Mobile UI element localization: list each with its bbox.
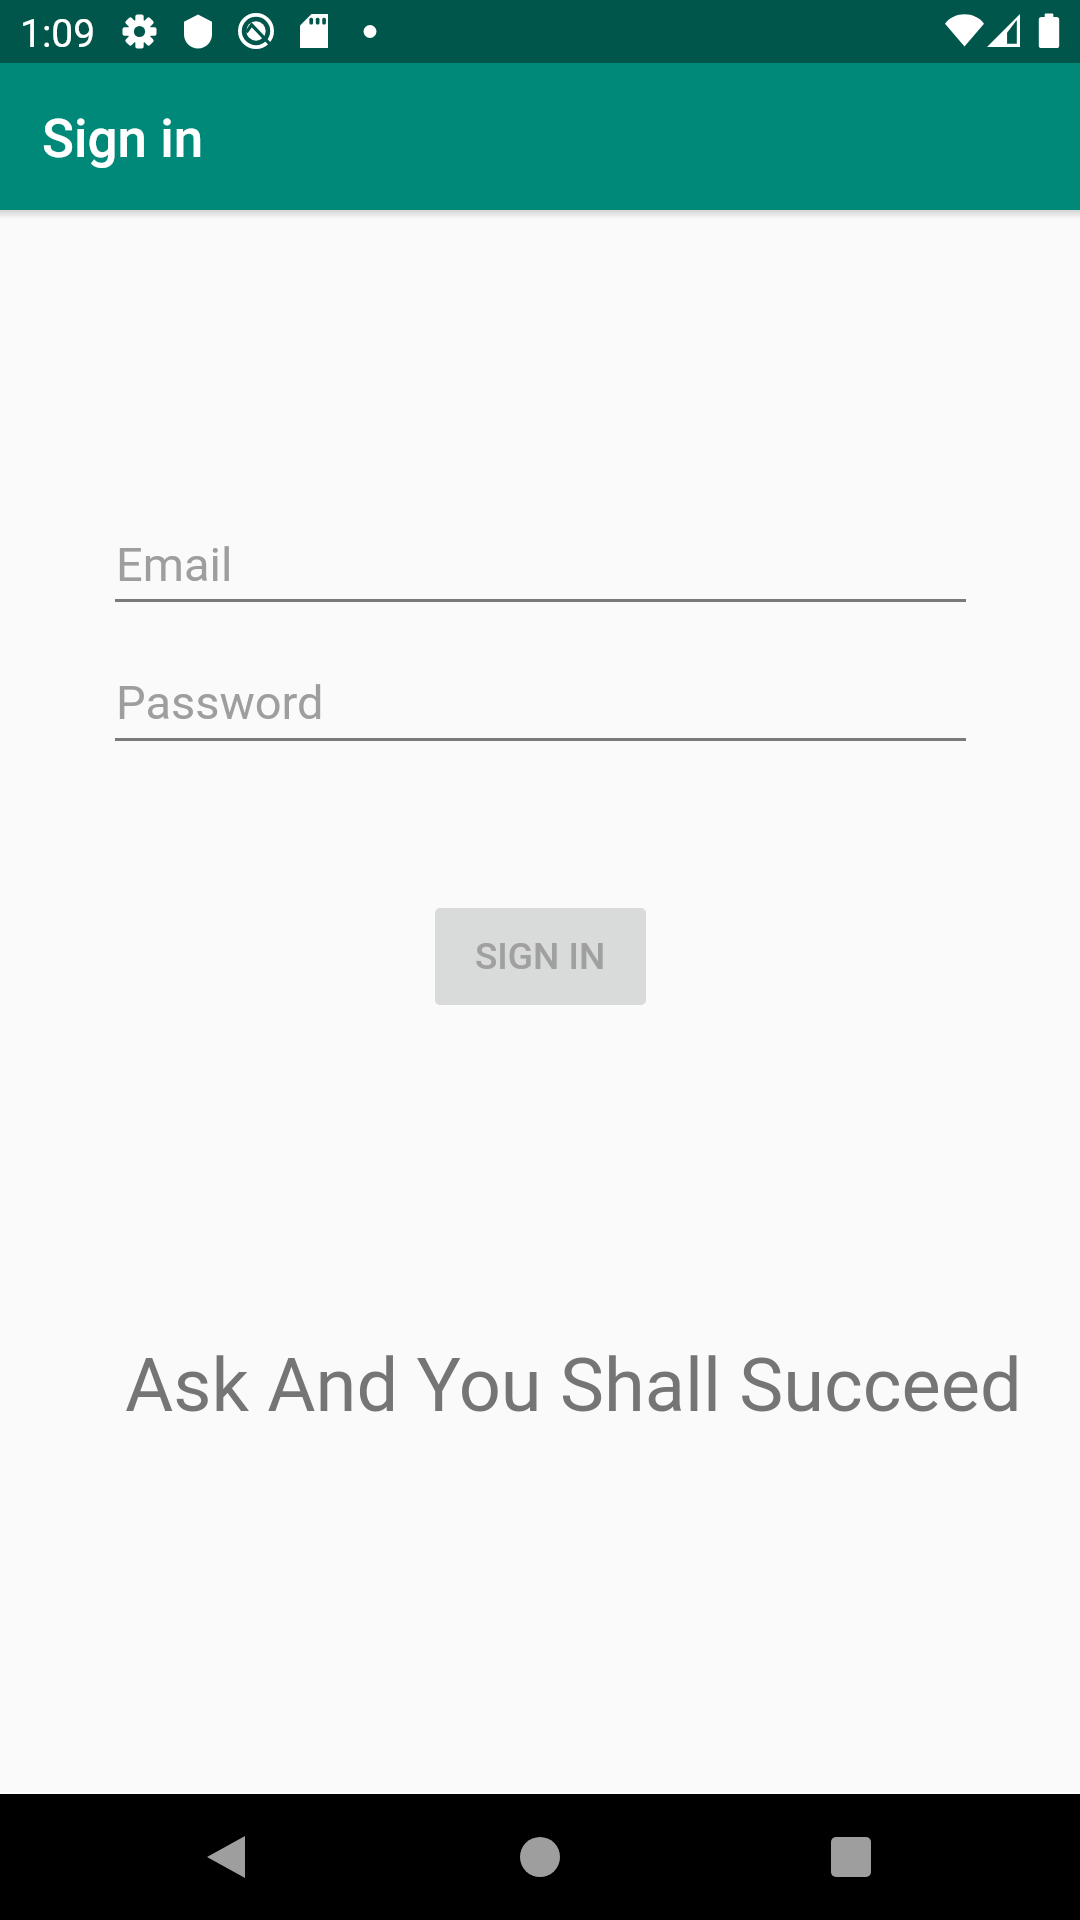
button[interactable]: SIGN IN	[435, 908, 646, 1005]
staticText: Password	[116, 675, 324, 730]
staticText: 1:09	[20, 11, 96, 57]
button[interactable]: Recent apps	[791, 1797, 911, 1917]
staticText: SIGN IN	[475, 935, 606, 978]
button[interactable]: Back	[166, 1797, 286, 1917]
button[interactable]: Home	[480, 1797, 600, 1917]
staticText: Sign in	[42, 108, 204, 170]
button[interactable]: Password	[115, 655, 966, 741]
button[interactable]: Email	[115, 517, 966, 602]
staticText: Email	[116, 537, 233, 592]
staticText: Ask And You Shall Succeed	[125, 1342, 1022, 1429]
